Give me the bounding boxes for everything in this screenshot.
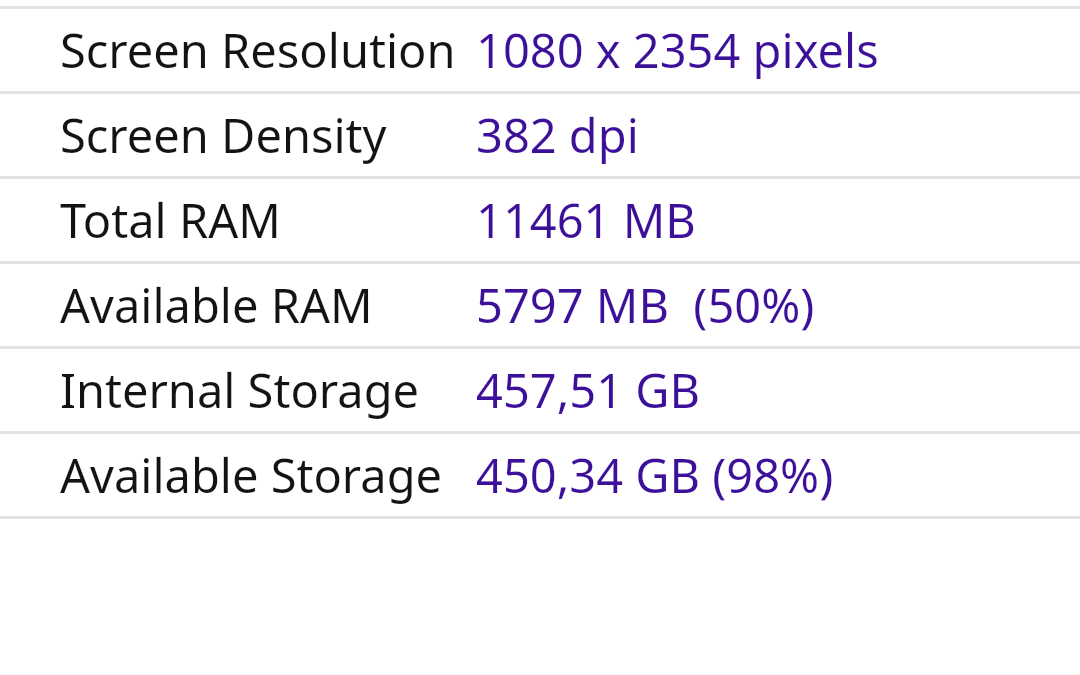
staticText: Available RAM [60, 273, 373, 337]
button[interactable]: Available Storage [0, 434, 1080, 516]
staticText: 382 dpi [476, 103, 639, 167]
staticText: Screen Resolution [60, 18, 456, 82]
staticText: 5797 MB (50%) [476, 273, 815, 337]
button[interactable]: Internal Storage [0, 349, 1080, 431]
staticText: Total RAM [60, 188, 281, 252]
staticText: Available Storage [60, 443, 443, 507]
button[interactable]: Screen Density [0, 94, 1080, 176]
button[interactable]: Screen Resolution [0, 9, 1080, 91]
staticText: 11461 MB [476, 188, 696, 252]
button[interactable]: Available RAM [0, 264, 1080, 346]
staticText: 457,51 GB [476, 358, 701, 422]
staticText: Internal Storage [60, 358, 420, 422]
staticText: 1080 x 2354 pixels [476, 18, 879, 82]
button[interactable]: Total RAM [0, 179, 1080, 261]
staticText: 450,34 GB (98%) [476, 443, 834, 507]
staticText: Screen Density [60, 103, 387, 167]
